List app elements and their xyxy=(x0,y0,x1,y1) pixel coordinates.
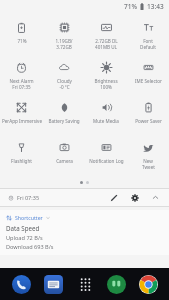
button[interactable]: Cloudy xyxy=(43,56,85,96)
button[interactable]: Camera xyxy=(43,136,85,176)
button[interactable]: Fri 07:35 xyxy=(6,192,42,203)
staticText: Fri 07:35 xyxy=(17,194,40,201)
button[interactable]: 2.72GB DL xyxy=(85,16,127,56)
button[interactable]: Phone xyxy=(10,273,32,295)
button[interactable]: Collapse xyxy=(148,190,163,205)
staticText: Power Saver xyxy=(135,118,162,124)
staticText: Brightness xyxy=(94,78,118,84)
staticText: Camera xyxy=(56,158,73,164)
button[interactable]: Flashlight xyxy=(0,136,43,176)
staticText: 401MB UL xyxy=(95,44,117,50)
button[interactable]: Next Alarm xyxy=(0,56,43,96)
staticText: Flashlight xyxy=(11,158,32,164)
staticText: 1.19GB/ xyxy=(55,38,73,44)
staticText: 13:43 xyxy=(147,2,164,11)
button[interactable]: Mute Media xyxy=(85,96,127,136)
button[interactable]: Font xyxy=(127,16,169,56)
staticText: IME Selector xyxy=(135,78,162,84)
staticText: -0 °C xyxy=(59,84,70,90)
staticText: Shortcutter xyxy=(15,214,43,221)
button[interactable]: Shortcutter xyxy=(0,210,169,255)
button[interactable]: Messages xyxy=(42,273,64,295)
staticText: Tweet xyxy=(142,164,155,170)
button[interactable]: Edit xyxy=(106,190,121,205)
button[interactable]: New xyxy=(127,136,169,176)
staticText: 100% xyxy=(100,84,112,90)
button[interactable]: Chrome xyxy=(137,273,159,295)
button[interactable]: IME Selector xyxy=(127,56,169,96)
staticText: Upload 72 B/s xyxy=(6,234,43,242)
button[interactable]: Notification Log xyxy=(85,136,127,176)
button[interactable]: Brightness xyxy=(85,56,127,96)
staticText: Data Speed xyxy=(6,224,40,232)
staticText: Fri 07:35 xyxy=(12,84,31,90)
staticText: PerApp Immersive xyxy=(2,118,42,124)
staticText: Mute Media xyxy=(93,118,119,124)
button[interactable]: WhatsApp xyxy=(105,273,127,295)
button[interactable]: Power Saver xyxy=(127,96,169,136)
button[interactable]: Battery Saving xyxy=(43,96,85,136)
staticText: 2.72GB DL xyxy=(95,38,118,44)
button[interactable]: Apps xyxy=(74,273,96,295)
staticText: Next Alarm xyxy=(9,78,34,84)
staticText: Battery Saving xyxy=(48,118,80,124)
button[interactable]: PerApp Immersive xyxy=(0,96,43,136)
staticText: 71% xyxy=(17,38,27,44)
staticText: New xyxy=(143,158,153,164)
staticText: Default xyxy=(140,44,156,50)
staticText: Cloudy xyxy=(57,78,72,84)
staticText: 71% xyxy=(124,2,137,11)
button[interactable]: 71% xyxy=(0,16,43,56)
button[interactable]: 1.19GB/ xyxy=(43,16,85,56)
button[interactable]: Settings xyxy=(127,190,142,205)
staticText: Download 693 B/s xyxy=(6,243,54,251)
staticText: 3.72GB xyxy=(56,44,72,50)
staticText: Font xyxy=(143,38,153,44)
staticText: Notification Log xyxy=(89,158,124,164)
